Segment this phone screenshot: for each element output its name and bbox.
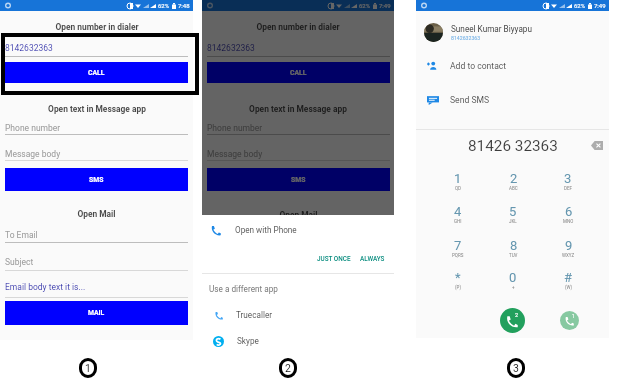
staticText: PQRS — [452, 253, 464, 258]
staticText: 1 — [572, 314, 575, 319]
other: Phone — [214, 311, 223, 320]
staticText: Send SMS — [450, 95, 490, 105]
staticText: 8 — [510, 238, 518, 253]
staticText: 1 — [85, 362, 91, 374]
staticText: 62% — [359, 2, 371, 9]
button[interactable]: JUST ONCE — [315, 254, 353, 264]
button[interactable]: SMS — [207, 168, 390, 191]
staticText: Open Mail — [77, 209, 116, 219]
staticText: Email body text it is... — [5, 282, 86, 292]
staticText: MAIL — [88, 309, 105, 317]
staticText: JUST ONCE — [317, 255, 351, 263]
button[interactable]: Skype — [202, 332, 394, 350]
staticText: TUV — [509, 253, 518, 258]
button[interactable]: 2 — [493, 171, 533, 199]
button[interactable]: 6 — [548, 204, 588, 232]
staticText: 81426 32363 — [468, 137, 558, 155]
staticText: Open number in dialer — [55, 22, 139, 32]
staticText: 3 — [564, 171, 572, 186]
button[interactable]: CALL — [207, 62, 390, 83]
button[interactable]: 8 — [493, 238, 533, 266]
staticText: GHI — [454, 219, 462, 224]
staticText: 62% — [574, 2, 586, 9]
staticText: Open text in Message app — [249, 104, 347, 114]
staticText: (W) — [565, 285, 573, 290]
button[interactable]: Phone — [202, 220, 394, 240]
button[interactable]: 5 — [493, 204, 533, 232]
button[interactable]: SMS — [5, 168, 188, 191]
staticText: QD — [455, 186, 462, 191]
staticText: 8142632363 — [207, 43, 255, 53]
staticText: CALL — [290, 69, 307, 77]
staticText: ABC — [509, 186, 518, 191]
button[interactable]: Send SMS — [416, 91, 609, 109]
staticText: WXYZ — [562, 253, 575, 258]
staticText: + — [512, 285, 515, 290]
button[interactable]: 9 — [548, 238, 588, 266]
staticText: 2 — [515, 312, 519, 318]
staticText: Open text in Message app — [48, 104, 146, 114]
staticText: ALWAYS — [360, 255, 385, 263]
staticText: 2 — [510, 171, 518, 186]
staticText: Skype — [237, 336, 259, 346]
button[interactable]: Add to contact — [416, 57, 609, 75]
staticText: (P) — [455, 285, 461, 290]
other: Phone — [210, 225, 221, 236]
staticText: 9 — [565, 238, 573, 253]
staticText: 2 — [285, 362, 291, 374]
button[interactable]: 3 — [548, 171, 588, 199]
staticText: 8142632363 — [451, 35, 481, 41]
staticText: Open with Phone — [235, 225, 297, 235]
staticText: SMS — [89, 176, 104, 184]
staticText: 5 — [509, 204, 517, 219]
staticText: DEF — [564, 186, 572, 191]
staticText: 1 — [454, 171, 462, 186]
staticText: 62% — [158, 2, 170, 9]
button[interactable]: 7 — [438, 238, 478, 266]
button[interactable]: Backspace — [591, 141, 603, 150]
button[interactable]: 1 — [438, 171, 478, 199]
button[interactable]: 0 — [493, 270, 533, 298]
staticText: Message body — [5, 149, 61, 159]
staticText: 3 — [513, 362, 519, 374]
staticText: Open number in dialer — [256, 22, 340, 32]
staticText: Phone number — [5, 123, 61, 133]
button[interactable]: * — [438, 270, 478, 298]
button[interactable]: ALWAYS — [358, 254, 387, 264]
staticText: Message body — [207, 149, 263, 159]
button[interactable]: CALL — [5, 62, 188, 83]
other: Skype — [213, 336, 224, 347]
staticText: Truecaller — [236, 310, 273, 320]
staticText: Add to contact — [450, 61, 507, 71]
staticText: Use a different app — [209, 284, 278, 294]
staticText: 7:49 — [594, 2, 606, 9]
staticText: 8142632363 — [5, 43, 53, 53]
staticText: To Email — [5, 230, 38, 240]
button[interactable]: Phone — [202, 306, 394, 324]
staticText: CALL — [88, 69, 105, 77]
staticText: 6 — [565, 204, 573, 219]
staticText: MNO — [563, 219, 574, 224]
button[interactable]: # — [548, 270, 588, 298]
button[interactable]: Call SIM 2 — [560, 311, 579, 330]
staticText: 7:49 — [379, 2, 391, 9]
staticText: * — [455, 270, 461, 285]
staticText: Subject — [5, 257, 34, 267]
button[interactable]: 4 — [438, 204, 478, 232]
staticText: 7 — [454, 238, 462, 253]
staticText: 7:48 — [178, 2, 190, 9]
staticText: 4 — [454, 204, 462, 219]
button[interactable]: Call SIM 1 — [500, 308, 525, 333]
button[interactable]: MAIL — [5, 301, 188, 325]
button[interactable]: Suneel Kumar Biyyapu — [416, 20, 609, 44]
staticText: # — [564, 270, 573, 285]
staticText: Phone number — [207, 123, 263, 133]
staticText: 0 — [509, 270, 517, 285]
staticText: JKL — [509, 219, 517, 224]
staticText: SMS — [291, 176, 306, 184]
staticText: Open Mail — [279, 210, 318, 220]
staticText: Suneel Kumar Biyyapu — [451, 24, 532, 34]
